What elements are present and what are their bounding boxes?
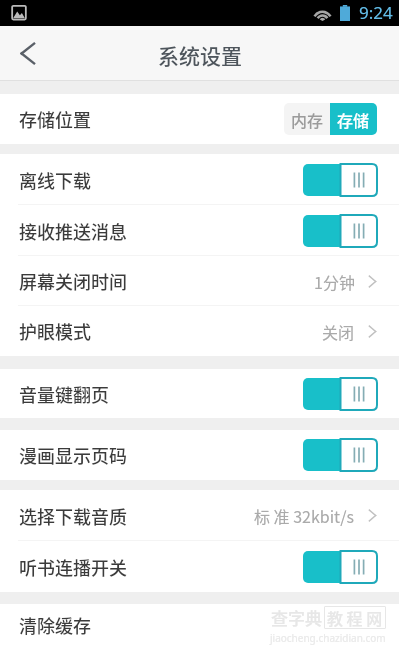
button[interactable]: 内存	[284, 103, 330, 135]
staticText: jiaocheng.chazidian.com	[270, 631, 386, 645]
button[interactable]: 接收推送消息	[0, 205, 399, 256]
staticText: 音量键翻页	[19, 381, 109, 407]
button[interactable]: 存储位置	[0, 94, 399, 144]
button[interactable]: 护眼模式	[0, 306, 399, 356]
staticText: 离线下载	[19, 167, 91, 193]
staticText: 漫画显示页码	[19, 442, 127, 468]
staticText: 1分钟	[314, 270, 355, 293]
staticText: 存储	[337, 108, 370, 131]
button[interactable]: Toggle	[303, 164, 377, 196]
staticText: 教 程 网	[327, 606, 383, 629]
button[interactable]: 音量键翻页	[0, 369, 399, 418]
button[interactable]: Toggle	[303, 551, 377, 583]
staticText: 清除缓存	[19, 612, 91, 638]
staticText: 接收推送消息	[19, 218, 127, 244]
button[interactable]: Back	[0, 26, 56, 81]
button[interactable]: 选择下载音质	[0, 490, 399, 541]
staticText: 内存	[291, 108, 324, 131]
button[interactable]: 听书连播开关	[0, 541, 399, 592]
staticText: 查字典	[271, 605, 322, 630]
staticText: 护眼模式	[19, 318, 91, 344]
staticText: 存储位置	[19, 106, 91, 132]
staticText: 屏幕关闭时间	[19, 268, 127, 294]
staticText: 听书连播开关	[19, 554, 127, 580]
staticText: 选择下载音质	[19, 503, 127, 529]
button[interactable]: Toggle	[303, 378, 377, 410]
staticText: 标 准 32kbit/s	[254, 504, 355, 527]
button[interactable]: 屏幕关闭时间	[0, 256, 399, 306]
button[interactable]: 清除缓存	[0, 604, 399, 646]
button[interactable]: 漫画显示页码	[0, 430, 399, 480]
button[interactable]: Toggle	[303, 215, 377, 247]
staticText: 系统设置	[158, 40, 242, 70]
staticText: 9:24	[359, 1, 393, 24]
button[interactable]: 存储	[330, 103, 377, 135]
button[interactable]: 离线下载	[0, 154, 399, 205]
staticText: 关闭	[322, 320, 355, 343]
button[interactable]: Toggle	[303, 439, 377, 471]
